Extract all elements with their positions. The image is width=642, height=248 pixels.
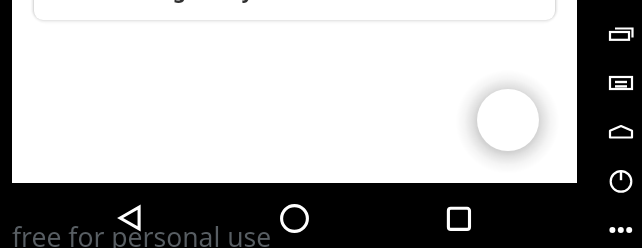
- staticText: free for personal use: [12, 219, 272, 248]
- button[interactable]: Home: [274, 198, 314, 238]
- button[interactable]: Great savings daily: [34, 0, 555, 20]
- button[interactable]: Back: [110, 198, 150, 238]
- staticText: Great savings daily: [52, 0, 254, 5]
- button[interactable]: Add: [477, 89, 539, 151]
- button[interactable]: More: [605, 214, 637, 246]
- button[interactable]: Recent apps: [439, 198, 479, 238]
- button[interactable]: Virtual sensors: [605, 67, 637, 99]
- button[interactable]: Fold: [605, 116, 637, 148]
- button[interactable]: Resize: [605, 18, 637, 50]
- button[interactable]: Power: [605, 165, 637, 197]
